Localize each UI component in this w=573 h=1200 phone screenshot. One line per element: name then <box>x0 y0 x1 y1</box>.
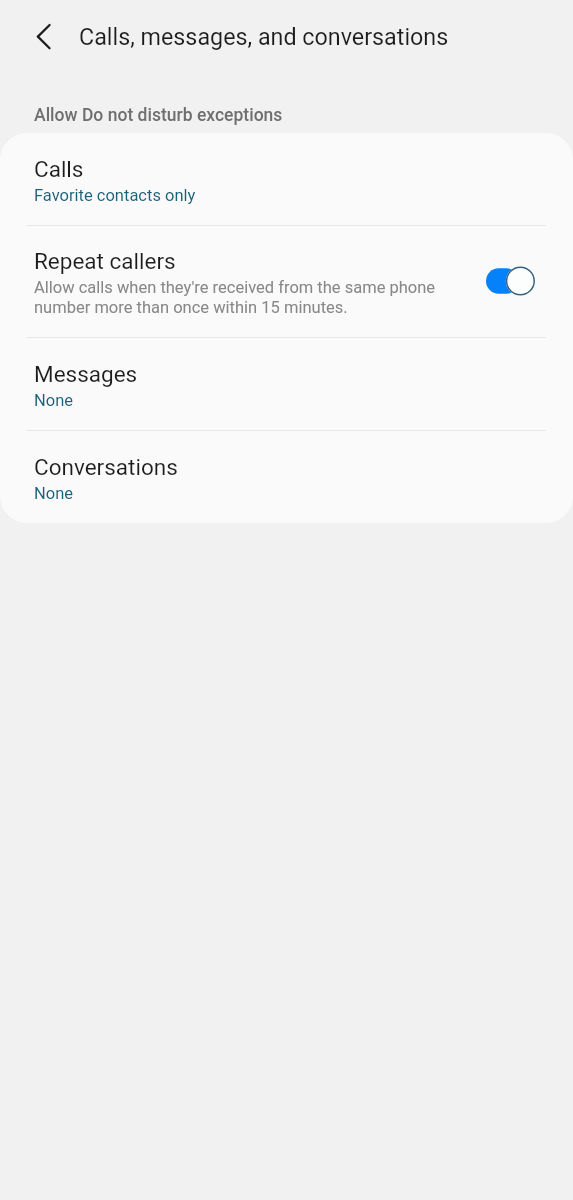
button[interactable]: Repeat callers, on <box>486 267 535 299</box>
staticText: Messages <box>34 361 138 387</box>
button[interactable]: Messages <box>0 338 573 430</box>
staticText: Calls <box>34 156 84 182</box>
button[interactable]: Conversations <box>0 431 573 523</box>
button[interactable]: Back <box>21 14 67 60</box>
button[interactable]: Calls <box>0 133 573 225</box>
staticText: None <box>34 484 74 503</box>
button[interactable]: Repeat callers <box>0 226 573 337</box>
staticText: Allow calls when they're received from t… <box>34 278 466 317</box>
staticText: Calls, messages, and conversations <box>79 23 449 50</box>
staticText: None <box>34 391 74 410</box>
staticText: Repeat callers <box>34 248 176 274</box>
staticText: Allow Do not disturb exceptions <box>34 105 283 126</box>
staticText: Conversations <box>34 454 178 480</box>
staticText: Favorite contacts only <box>34 186 196 205</box>
